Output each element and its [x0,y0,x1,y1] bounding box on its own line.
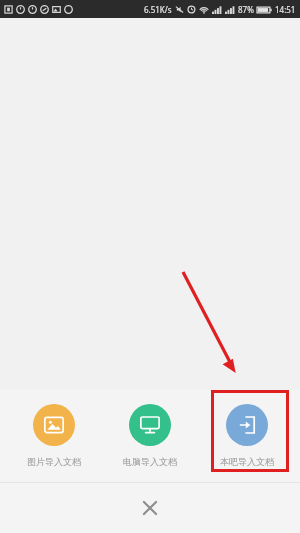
staticText: 87% [238,4,254,15]
staticText: 图片导入文档 [27,456,81,467]
staticText: 6.51K/s [144,4,172,15]
button[interactable]: 图片导入文档 [11,402,97,469]
staticText: 电脑导入文档 [123,456,177,467]
button[interactable]: 关闭 [0,483,300,533]
button[interactable]: 本吧导入文档 [204,402,290,469]
staticText: 14:51 [275,4,296,15]
staticText: 本吧导入文档 [220,456,274,467]
button[interactable]: 电脑导入文档 [107,402,193,469]
